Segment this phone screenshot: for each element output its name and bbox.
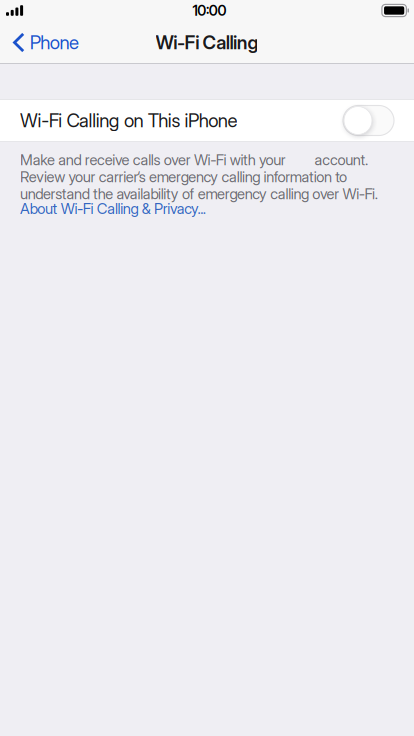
button[interactable]: Wi-Fi Calling on This iPhone <box>0 99 414 142</box>
button[interactable]: About Wi-Fi Calling & Privacy... <box>20 200 392 218</box>
staticText: About Wi-Fi Calling & Privacy... <box>20 200 206 218</box>
staticText: Make and receive calls over Wi-Fi with y… <box>20 151 378 203</box>
button[interactable]: Phone <box>0 24 87 61</box>
staticText: Wi-Fi Calling on This iPhone <box>20 109 237 132</box>
staticText: Phone <box>30 31 79 54</box>
staticText: 10:00 <box>192 2 227 19</box>
staticText: Wi-Fi Calling <box>156 31 258 54</box>
